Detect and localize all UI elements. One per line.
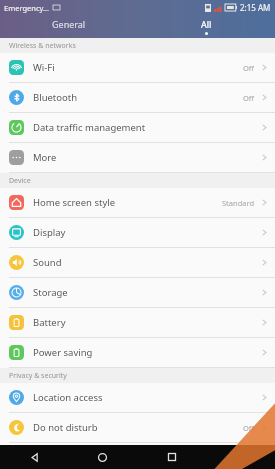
button[interactable]: Storage — [0, 278, 275, 308]
staticText: Display — [33, 226, 262, 239]
button[interactable]: Power saving — [0, 338, 275, 368]
staticText: General — [52, 18, 86, 30]
staticText: Off — [243, 93, 255, 103]
button[interactable]: All — [137, 15, 275, 38]
staticText: Off — [243, 423, 255, 433]
staticText: Battery — [33, 316, 262, 329]
staticText: Emergency... — [4, 3, 50, 13]
button[interactable]: Sound — [0, 248, 275, 278]
button[interactable]: Display — [0, 218, 275, 248]
staticText: Do not disturb — [33, 421, 243, 434]
staticText: Data traffic management — [33, 121, 262, 134]
staticText: Location access — [33, 391, 262, 404]
button[interactable]: Home screen style — [0, 188, 275, 218]
button[interactable]: Wi-Fi — [0, 53, 275, 83]
button[interactable]: Battery — [0, 308, 275, 338]
staticText: Device — [9, 176, 31, 186]
button[interactable]: Recents — [137, 445, 206, 469]
button[interactable] — [0, 443, 275, 445]
button[interactable]: Back — [0, 445, 68, 469]
staticText: Power saving — [33, 346, 262, 359]
button[interactable]: Home — [68, 445, 137, 469]
button[interactable]: Bluetooth — [0, 83, 275, 113]
staticText: Home screen style — [33, 196, 222, 209]
staticText: Bluetooth — [33, 91, 243, 104]
button[interactable]: Data traffic management — [0, 113, 275, 143]
staticText: Wireless & networks — [9, 41, 76, 51]
staticText: Privacy & security — [9, 371, 67, 381]
staticText: All — [201, 18, 212, 30]
staticText: More — [33, 151, 262, 164]
button[interactable]: Do not disturb — [0, 413, 275, 443]
button[interactable]: General — [0, 15, 137, 38]
staticText: Storage — [33, 286, 262, 299]
staticText: Wi-Fi — [33, 61, 243, 74]
staticText: Sound — [33, 256, 262, 269]
button[interactable]: More — [0, 143, 275, 173]
staticText: Standard — [222, 198, 255, 208]
staticText: Off — [243, 63, 255, 73]
button[interactable]: Location access — [0, 383, 275, 413]
staticText: 2:15 AM — [240, 2, 271, 13]
